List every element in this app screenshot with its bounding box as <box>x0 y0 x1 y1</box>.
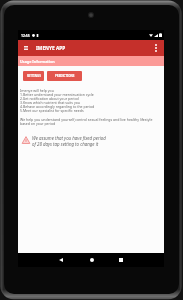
button[interactable]: Home <box>86 254 98 266</box>
button[interactable]: PREDICTIONS <box>47 71 82 81</box>
button[interactable]: We assume that you have fixed period <box>22 135 106 147</box>
button[interactable]: More options <box>148 40 164 56</box>
button[interactable]: Recent apps <box>115 254 127 266</box>
staticText: IMENYE APP <box>36 45 66 52</box>
staticText: Usage Information <box>20 59 55 64</box>
staticText: We assume that you have fixed period <box>32 135 106 141</box>
staticText: SETTINGS <box>27 74 41 78</box>
staticText: of 28 days tap setting to change it <box>32 141 99 147</box>
button[interactable]: Back <box>55 254 67 266</box>
staticText: Imenye will help you 1.Better understand… <box>20 88 95 114</box>
staticText: 12:55 <box>21 33 30 38</box>
button[interactable]: Open navigation menu <box>18 40 33 56</box>
button[interactable]: SETTINGS <box>23 71 44 81</box>
staticText: We help you understand yourself,control … <box>20 117 153 127</box>
staticText: PREDICTIONS <box>55 74 75 78</box>
